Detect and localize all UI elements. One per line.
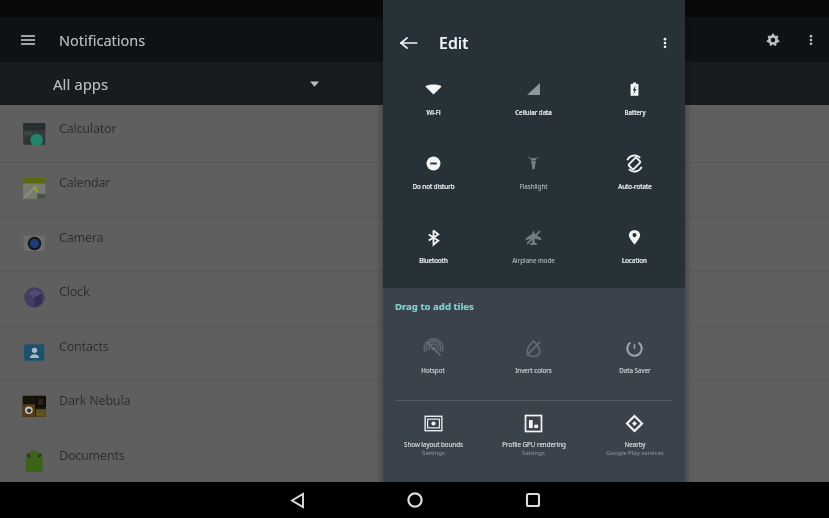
staticText: Data Saver <box>619 366 651 374</box>
staticText: Documents <box>59 447 125 464</box>
button[interactable]: Flashlight <box>483 142 584 216</box>
staticText: Dark Nebula <box>59 392 131 409</box>
staticText: Contacts <box>59 338 109 355</box>
staticText: Calendar <box>59 174 111 191</box>
button[interactable]: Auto-rotate <box>584 142 685 216</box>
staticText: Show layout bounds <box>404 440 463 448</box>
button[interactable]: Battery <box>584 68 685 142</box>
button[interactable]: Data Saver <box>584 324 685 400</box>
staticText: Flashlight <box>519 182 548 190</box>
button[interactable]: Airplane mode <box>483 216 584 288</box>
staticText: Google Play services <box>606 449 664 457</box>
button[interactable]: Nearby <box>584 401 685 463</box>
staticText: Bluetooth <box>419 256 448 264</box>
button[interactable]: Calculator <box>0 108 829 163</box>
button[interactable]: Profile GPU rendering <box>483 401 584 463</box>
staticText: Nearby <box>624 440 646 448</box>
button[interactable]: More options <box>645 18 685 68</box>
staticText: Hotspot <box>421 366 445 374</box>
button[interactable]: Invert colors <box>483 324 584 400</box>
staticText: Clock <box>59 283 90 300</box>
staticText: Wi-Fi <box>426 108 441 116</box>
staticText: Settings <box>522 449 545 457</box>
button[interactable]: Clock <box>0 271 829 326</box>
staticText: Invert colors <box>515 366 552 374</box>
staticText: Airplane mode <box>512 256 555 264</box>
staticText: Edit <box>439 32 469 54</box>
button[interactable]: Camera <box>0 217 829 272</box>
button[interactable]: Location <box>584 216 685 288</box>
staticText: Battery <box>624 108 646 116</box>
staticText: Location <box>622 256 647 264</box>
button[interactable]: More options <box>795 17 827 62</box>
button[interactable]: Contacts <box>0 326 829 381</box>
button[interactable]: Calendar <box>0 162 829 217</box>
staticText: Notifications <box>59 30 146 50</box>
staticText: Settings <box>422 449 445 457</box>
button[interactable]: All apps <box>0 62 336 105</box>
staticText: Auto-rotate <box>618 182 652 190</box>
staticText: Drag to add tiles <box>395 300 474 313</box>
button[interactable]: Bluetooth <box>383 216 483 288</box>
button[interactable]: Do not disturb <box>383 142 483 216</box>
staticText: Do not disturb <box>412 182 455 190</box>
staticText: Profile GPU rendering <box>502 440 566 448</box>
button[interactable]: Show layout bounds <box>383 401 483 463</box>
button[interactable]: Home <box>356 482 474 518</box>
staticText: All apps <box>53 74 109 94</box>
button[interactable]: Documents <box>0 435 829 490</box>
button[interactable]: Cellular data <box>483 68 584 142</box>
button[interactable]: Recent apps <box>474 482 592 518</box>
staticText: Calculator <box>59 120 117 137</box>
staticText: Cellular data <box>515 108 552 116</box>
button[interactable]: Wi-Fi <box>383 68 483 142</box>
button[interactable]: Settings <box>751 17 795 62</box>
staticText: Camera <box>59 229 104 246</box>
button[interactable]: Dark Nebula <box>0 380 829 435</box>
button[interactable]: Hotspot <box>383 324 483 400</box>
button[interactable]: Back <box>383 18 433 68</box>
button[interactable]: Open navigation menu <box>0 17 55 62</box>
button[interactable]: Back <box>238 482 356 518</box>
